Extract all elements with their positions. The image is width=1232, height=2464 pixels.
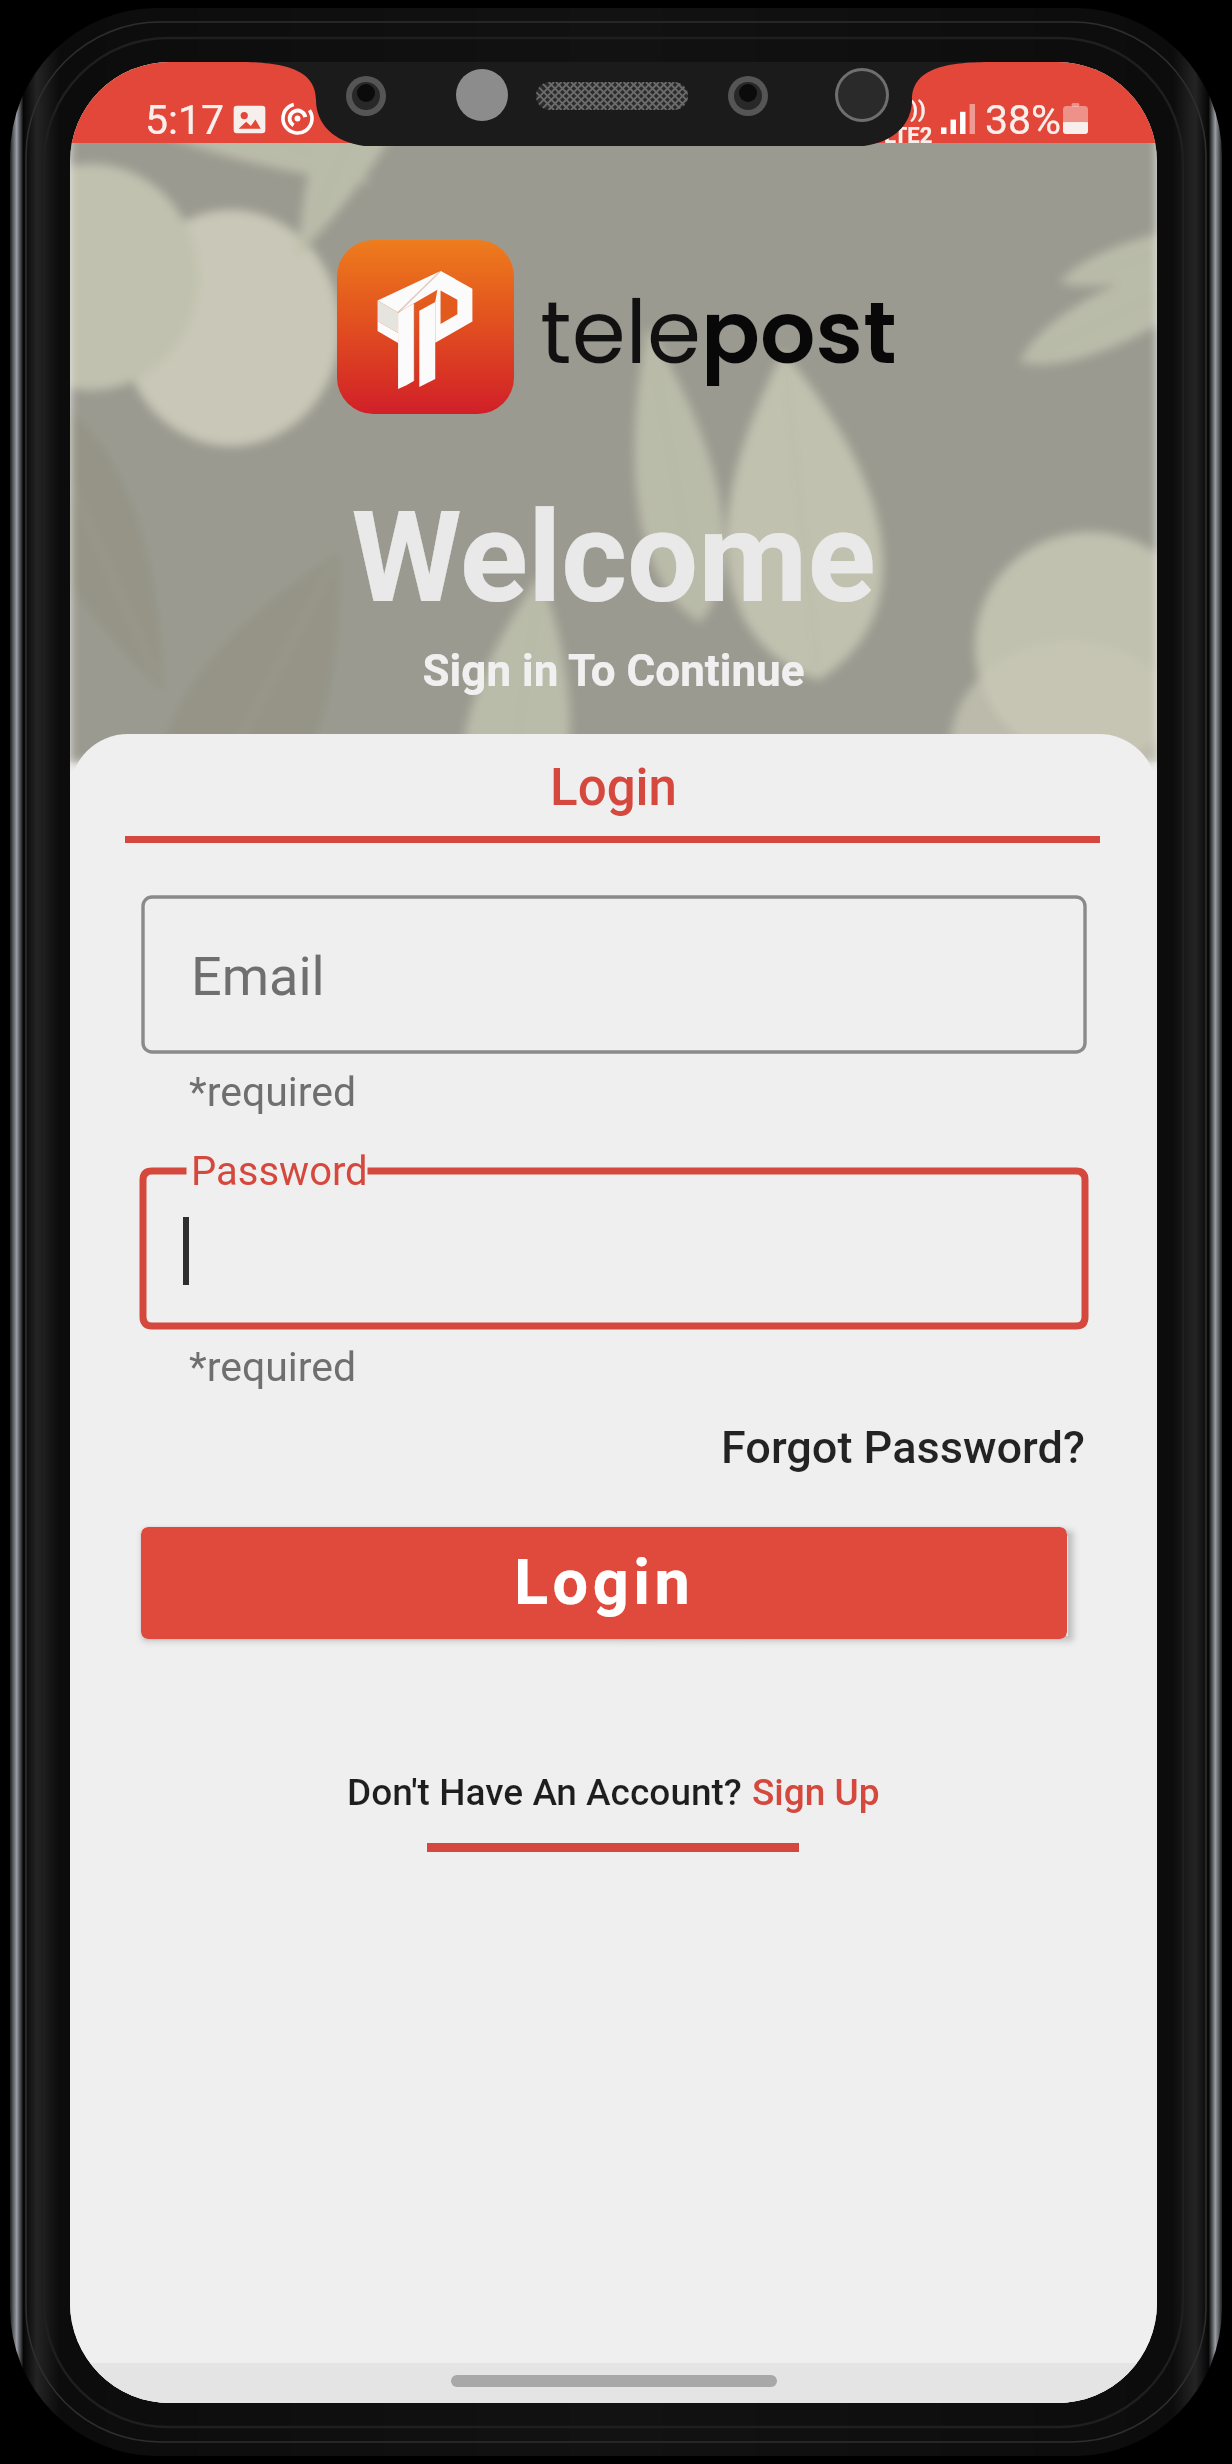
button[interactable] — [143, 1171, 1085, 1326]
staticText: Sign Up — [752, 1771, 880, 1814]
staticText: LTE2 — [884, 123, 933, 149]
staticText: 38% — [985, 96, 1062, 144]
staticText: Forgot Password? — [721, 1421, 1085, 1474]
staticText: *required — [189, 1343, 357, 1391]
staticText: Login — [70, 758, 1157, 818]
staticText: Don't Have An Account? — [347, 1771, 752, 1814]
staticText: Sign in To Continue — [70, 645, 1157, 697]
staticText: Email — [191, 945, 325, 1008]
staticText: tele — [540, 272, 701, 394]
button[interactable]: Login — [141, 1527, 1067, 1639]
button[interactable]: Email — [143, 897, 1085, 1052]
staticText: Welcome — [70, 484, 1157, 632]
staticText: post — [701, 272, 897, 394]
staticText: Login — [514, 1546, 695, 1620]
other: Sync — [281, 102, 314, 135]
staticText: 5:17 — [145, 96, 225, 144]
staticText: Vo)) — [884, 97, 926, 123]
button[interactable]: Forgot Password? — [70, 1421, 1157, 1483]
staticText: *required — [189, 1068, 357, 1116]
button[interactable]: Sign Up — [752, 1771, 880, 1814]
staticText: Password — [191, 1148, 368, 1195]
other: Screenshot — [233, 103, 266, 136]
